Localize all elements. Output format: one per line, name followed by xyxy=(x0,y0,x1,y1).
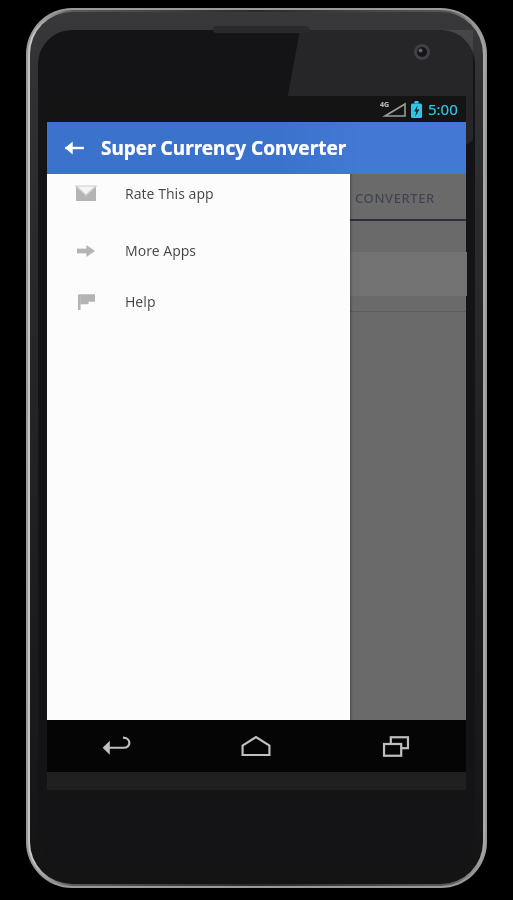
staticText: Help xyxy=(125,292,156,311)
button[interactable]: Back xyxy=(47,720,186,772)
button[interactable]: More Apps xyxy=(47,225,350,276)
staticText: CONVERTER xyxy=(355,189,435,207)
staticText: 4G xyxy=(380,100,390,110)
button[interactable]: Recent apps xyxy=(326,720,466,772)
button[interactable]: Back xyxy=(47,122,101,174)
button[interactable]: Rate This app xyxy=(47,168,350,219)
button[interactable]: Help xyxy=(47,276,350,327)
staticText: Rate This app xyxy=(125,184,214,203)
staticText: Super Currency Converter xyxy=(101,135,347,161)
staticText: More Apps xyxy=(125,241,197,260)
button[interactable]: Home xyxy=(186,720,326,772)
staticText: 5:00 xyxy=(428,99,458,119)
